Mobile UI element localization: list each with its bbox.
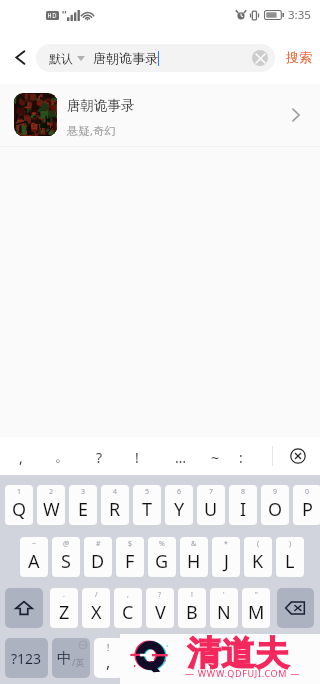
button[interactable]: ! (94, 638, 123, 678)
staticText: Y (174, 497, 185, 522)
button[interactable]: Hide keyboard (280, 437, 316, 475)
staticText: ? (158, 590, 162, 600)
button[interactable]: Clear text (252, 50, 268, 66)
button[interactable]: & (180, 537, 208, 577)
button[interactable]: ? (81, 437, 117, 475)
staticText: ! (135, 448, 139, 467)
button[interactable]: ' (210, 588, 238, 628)
staticText: 悬疑,奇幻 (67, 123, 117, 139)
staticText: 。 (55, 448, 69, 466)
button[interactable]: 8 (229, 485, 257, 525)
staticText: / (95, 590, 98, 600)
staticText: R (109, 497, 121, 522)
button[interactable]: ? (146, 588, 174, 628)
button[interactable]: 5 (133, 485, 161, 525)
staticText: 4 (113, 487, 118, 497)
button[interactable]: 。 (44, 437, 80, 475)
button[interactable]: # (84, 537, 112, 577)
staticText: 6 (177, 487, 182, 497)
button[interactable]: ! (178, 588, 206, 628)
staticText: $ (128, 539, 133, 549)
button[interactable]: 1 (5, 485, 33, 525)
staticText: M (248, 600, 265, 625)
button[interactable]: 唐朝诡事录 (0, 84, 320, 146)
staticText: , (127, 590, 129, 600)
staticText: F (125, 549, 135, 574)
staticText: 8 (241, 487, 246, 497)
staticText: V (155, 600, 166, 625)
button[interactable]: ?123 (5, 638, 48, 678)
button[interactable]: " (242, 588, 270, 628)
button[interactable]: 7 (197, 485, 225, 525)
staticText: W (43, 497, 60, 522)
button[interactable]: . (50, 588, 78, 628)
button[interactable]: 4 (101, 485, 129, 525)
staticText: 0 (305, 487, 310, 497)
staticText: 2 (49, 487, 54, 497)
staticText: /英 (72, 656, 85, 668)
staticText: : (239, 448, 243, 467)
button[interactable]: $ (116, 537, 144, 577)
staticText: … (175, 448, 187, 467)
button[interactable]: * (212, 537, 240, 577)
staticText: K (252, 549, 264, 574)
staticText: ' (223, 590, 225, 600)
button[interactable]: @ (52, 537, 80, 577)
staticText: ? (96, 448, 103, 467)
staticText: @ (63, 539, 70, 549)
staticText: C (122, 600, 134, 625)
button[interactable]: 2 (37, 485, 65, 525)
button[interactable]: ) (276, 537, 304, 577)
staticText: T (142, 497, 153, 522)
staticText: , (106, 651, 111, 673)
button[interactable]: 中 (52, 638, 90, 678)
staticText: ! (191, 590, 193, 600)
button[interactable]: , (114, 588, 142, 628)
staticText: 唐朝诡事录 (67, 97, 135, 114)
button[interactable]: / (82, 588, 110, 628)
staticText: ?123 (11, 649, 42, 668)
staticText: O (268, 497, 283, 522)
staticText: 1 (17, 487, 22, 497)
staticText: 清道夫 (187, 632, 289, 675)
staticText: I (240, 497, 247, 522)
staticText: H (187, 549, 201, 574)
button[interactable]: 默认 (36, 44, 275, 72)
button[interactable]: … (163, 437, 199, 475)
staticText: ) (289, 539, 292, 549)
staticText: E (78, 497, 89, 522)
button[interactable]: Shift (5, 588, 43, 628)
button[interactable]: : (223, 437, 259, 475)
staticText: U (204, 497, 218, 522)
staticText: A (28, 549, 40, 574)
button[interactable]: % (148, 537, 176, 577)
button[interactable]: 搜索 (281, 39, 317, 75)
staticText: Q (12, 497, 27, 522)
staticText: J (224, 549, 229, 574)
staticText: , (19, 448, 23, 467)
staticText: ! (107, 642, 110, 653)
button[interactable]: Backspace (277, 588, 314, 628)
button[interactable]: 3 (69, 485, 97, 525)
button[interactable]: ~ (197, 437, 233, 475)
staticText: 默认 (49, 51, 73, 66)
staticText: 5 (145, 487, 150, 497)
button[interactable]: , (3, 437, 39, 475)
staticText: 搜索 (286, 49, 312, 65)
staticText: L (285, 549, 295, 574)
button[interactable]: ( (244, 537, 272, 577)
button[interactable]: 9 (261, 485, 289, 525)
button[interactable]: ! (119, 437, 155, 475)
staticText: & (191, 539, 197, 549)
staticText: " (255, 590, 258, 600)
staticText: 唐朝诡事录 (93, 50, 158, 66)
button[interactable]: Open detail (286, 105, 306, 125)
staticText: N (217, 600, 231, 625)
staticText: P (302, 497, 313, 522)
staticText: . (63, 590, 65, 600)
button[interactable]: 6 (165, 485, 193, 525)
staticText: 3:35 (288, 7, 311, 23)
button[interactable]: 0 (293, 485, 320, 525)
button[interactable]: ~ (20, 537, 48, 577)
button[interactable]: Back (4, 41, 36, 73)
